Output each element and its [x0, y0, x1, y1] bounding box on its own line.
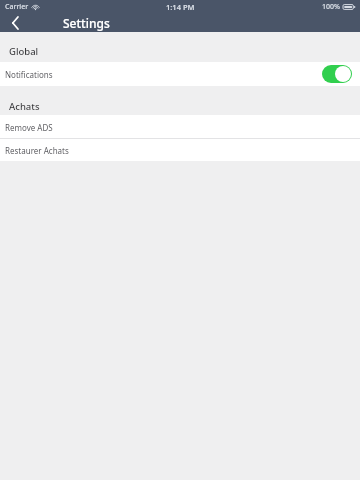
- button[interactable]: Notifications toggle, on: [322, 65, 352, 83]
- staticText: Global: [9, 45, 39, 58]
- button[interactable]: Back: [0, 13, 30, 32]
- staticText: Remove ADS: [5, 122, 53, 133]
- button[interactable]: Remove ADS: [0, 115, 360, 139]
- button[interactable]: Notifications: [0, 62, 360, 86]
- staticText: Carrier: [5, 2, 29, 12]
- button[interactable]: Restaurer Achats: [0, 139, 360, 161]
- staticText: 100%: [322, 2, 340, 12]
- staticText: Restaurer Achats: [5, 145, 69, 156]
- staticText: 1:14 PM: [166, 2, 195, 12]
- staticText: Achats: [9, 100, 40, 113]
- staticText: Notifications: [5, 69, 53, 80]
- staticText: Settings: [63, 15, 110, 31]
